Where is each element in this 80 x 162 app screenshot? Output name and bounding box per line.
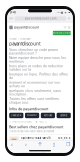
staticText: Notre equipe deniche pour vous les meill… [9, 56, 66, 63]
button[interactable]: RETOURS [41, 113, 55, 118]
staticText: ▪▪▮ ᯤ ▰ [57, 10, 70, 14]
button[interactable]: Chaise de bureau [9, 149, 71, 162]
staticText: AA [9, 17, 13, 20]
button[interactable]: Aspirateur Balai sans fil [9, 135, 71, 149]
staticText: payantdiscount.com [25, 17, 56, 20]
staticText: Infos de payantdiscount [9, 107, 48, 111]
button[interactable]: Back [9, 141, 15, 147]
button[interactable]: LIVRAISON [9, 113, 23, 118]
staticText: ↑ [38, 141, 42, 147]
staticText: ‹ [11, 141, 13, 147]
staticText: Accueil › Boutiques [9, 37, 30, 40]
staticText: ★★★★☆ (1 284) [20, 144, 38, 147]
staticText: Toutes les offres sont verifiees chaque … [9, 97, 59, 104]
staticText: payantdiscount [9, 41, 40, 46]
staticText: 129,99 € [58, 136, 71, 140]
button[interactable]: Bookmarks [51, 141, 57, 147]
staticText: SERVICE [60, 114, 67, 117]
staticText: Selection des meilleures ventes du momen… [9, 130, 54, 133]
button[interactable]: Tabs [65, 141, 71, 147]
staticText: bons plans et codes de reduction valides… [9, 64, 63, 71]
staticText: 9:41 [10, 10, 16, 14]
button[interactable]: Share [37, 141, 43, 147]
button[interactable]: PAIEMENT [25, 113, 39, 118]
staticText: Chaise de bureau [20, 150, 45, 154]
staticText: 25Kpa Lavable [20, 140, 40, 144]
staticText: VOIR LES CODES [53, 32, 71, 34]
staticText: 89,90 € [59, 150, 71, 154]
staticText: ▯ [52, 141, 55, 147]
button[interactable]: SERVICE [57, 113, 71, 118]
staticText: PAIEMENT [27, 114, 37, 117]
staticText: ⟳ [68, 17, 71, 20]
staticText: › [25, 141, 27, 147]
staticText: ☰ [68, 26, 71, 29]
staticText: Aspirateur Balai sans fil [20, 136, 51, 140]
button[interactable]: VOIR LES CODES [53, 31, 71, 35]
button[interactable]: Forward [23, 141, 29, 147]
staticText: boutique en ligne. Profitez des offres d… [9, 73, 68, 80]
staticText: moment et economisez sur vos achats en [9, 81, 60, 88]
staticText: ✓ Verifie le 12 juin ★ 4,6 / 5 [9, 120, 46, 123]
staticText: ♡ [63, 25, 66, 29]
staticText: ergonomique reglable [20, 154, 53, 158]
staticText: LIVRAISON [11, 114, 22, 117]
staticText: RETOURS [44, 114, 52, 117]
staticText: payantdiscount [14, 26, 39, 29]
staticText: ❐ [66, 141, 70, 147]
staticText: Best sellers chez payantdiscount [9, 125, 63, 129]
staticText: Vous cherchez un code promo payantdiscou… [9, 48, 58, 55]
staticText: quelques clics seulement, sans inscripti… [9, 89, 61, 96]
